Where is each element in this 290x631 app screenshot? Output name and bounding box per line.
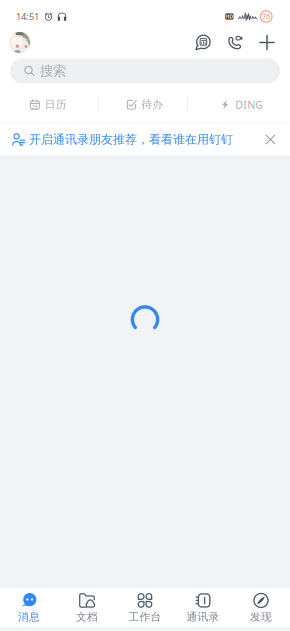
button[interactable]: 待办 <box>97 93 193 115</box>
staticText: 待办 <box>141 98 163 111</box>
button[interactable]: Close <box>260 129 281 150</box>
staticText: 通讯录 <box>186 610 219 623</box>
button[interactable]: DING <box>193 93 290 115</box>
staticText: DING <box>235 97 263 112</box>
staticText: 搜索 <box>40 63 66 79</box>
staticText: 14:51 <box>16 10 39 23</box>
button[interactable]: 消息 <box>0 588 58 627</box>
button[interactable]: 搜索 <box>10 58 280 83</box>
staticText: 消息 <box>18 610 40 623</box>
staticText: 工作台 <box>128 610 161 623</box>
button[interactable]: Add <box>251 26 283 58</box>
staticText: 文档 <box>76 610 98 623</box>
staticText: 日历 <box>45 98 67 111</box>
staticText: HD <box>225 13 233 20</box>
staticText: 28 <box>32 103 38 110</box>
button[interactable]: Video call <box>219 26 251 58</box>
button[interactable]: 通讯录 <box>174 588 232 627</box>
button[interactable]: Ding <box>187 26 219 58</box>
button[interactable]: 28 <box>0 93 97 115</box>
button[interactable]: Profile <box>4 27 35 58</box>
button[interactable]: 文档 <box>58 588 116 627</box>
button[interactable]: 工作台 <box>116 588 174 627</box>
staticText: 开启通讯录朋友推荐，看看谁在用钉钉 <box>29 132 233 147</box>
staticText: 发现 <box>250 610 272 623</box>
staticText: 76 <box>262 12 270 21</box>
button[interactable]: 发现 <box>232 588 290 627</box>
